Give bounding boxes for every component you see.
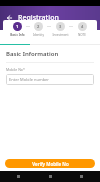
- button[interactable]: 4: [73, 22, 91, 37]
- staticText: 1: [16, 24, 19, 29]
- staticText: 4: [81, 24, 84, 29]
- staticText: NOTE: [78, 33, 86, 37]
- staticText: Basic Info: [10, 33, 25, 37]
- staticText: Basic Information: [6, 50, 59, 58]
- staticText: 2: [37, 24, 40, 29]
- staticText: Identity: [33, 33, 44, 37]
- staticText: Verify Mobile No: [32, 161, 69, 167]
- button[interactable]: Back: [14, 172, 23, 181]
- button[interactable]: Recents: [77, 172, 86, 181]
- button[interactable]: Home: [46, 172, 55, 181]
- staticText: 3: [59, 24, 62, 29]
- button[interactable]: Enter Mobile number: [6, 74, 94, 85]
- button[interactable]: Back: [3, 12, 15, 24]
- button[interactable]: 2: [30, 22, 47, 37]
- button[interactable]: Verify Mobile No: [5, 159, 95, 168]
- staticText: Registration: [18, 13, 59, 23]
- staticText: Enter Mobile number: [9, 77, 50, 82]
- staticText: Investment: [52, 33, 69, 37]
- button[interactable]: 3: [51, 22, 69, 37]
- button[interactable]: 1: [9, 22, 26, 37]
- staticText: Mobile No*: [6, 67, 25, 72]
